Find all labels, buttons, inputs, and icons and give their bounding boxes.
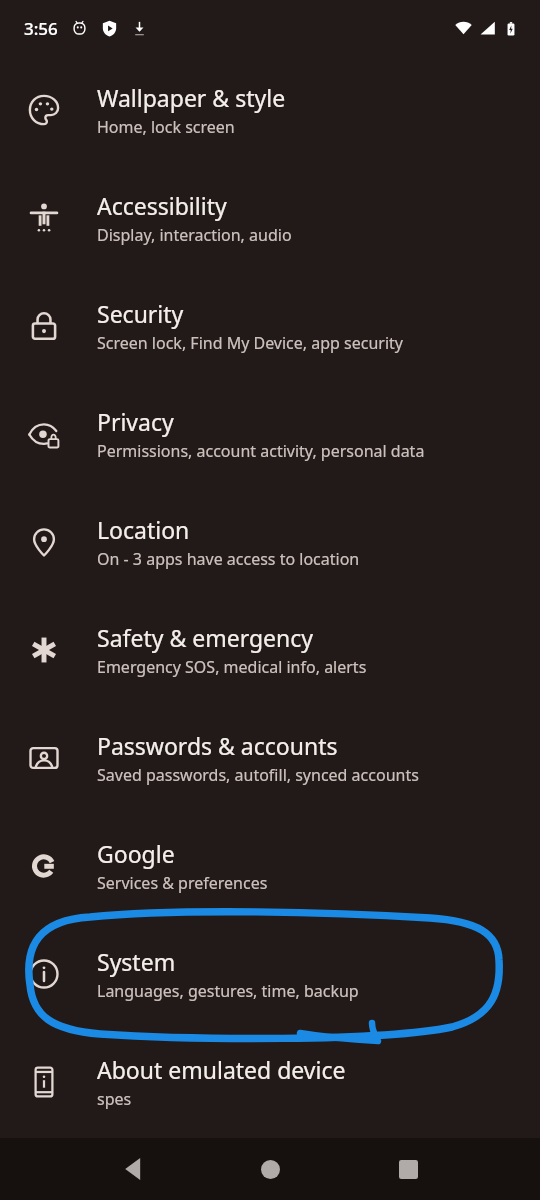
staticText: Passwords & accounts (97, 730, 338, 761)
staticText: Wallpaper & style (97, 82, 286, 113)
button[interactable]: Home (246, 1145, 294, 1193)
button[interactable]: Safety & emergency (0, 596, 540, 704)
staticText: Permissions, account activity, personal … (97, 440, 425, 462)
button[interactable]: About emulated device (0, 1028, 540, 1136)
staticText: Accessibility (97, 190, 227, 221)
staticText: Safety & emergency (97, 622, 314, 653)
staticText: Saved passwords, autofill, synced accoun… (97, 764, 419, 786)
button[interactable]: Google (0, 812, 540, 920)
staticText: Google (97, 838, 175, 869)
button[interactable]: Passwords & accounts (0, 704, 540, 812)
staticText: About emulated device (97, 1054, 346, 1085)
button[interactable]: Recent apps (384, 1145, 432, 1193)
staticText: Home, lock screen (97, 116, 235, 138)
staticText: Location (97, 514, 190, 545)
staticText: spes (97, 1088, 132, 1110)
staticText: Privacy (97, 406, 174, 437)
staticText: Services & preferences (97, 872, 268, 894)
staticText: System (97, 946, 176, 977)
button[interactable]: Accessibility (0, 164, 540, 272)
button[interactable]: Security (0, 272, 540, 380)
staticText: On - 3 apps have access to location (97, 548, 360, 570)
button[interactable]: Location (0, 488, 540, 596)
button[interactable]: Wallpaper & style (0, 56, 540, 164)
staticText: Security (97, 298, 184, 329)
staticText: Screen lock, Find My Device, app securit… (97, 332, 404, 354)
staticText: Emergency SOS, medical info, alerts (97, 656, 367, 678)
staticText: 3:56 (24, 17, 58, 40)
staticText: Languages, gestures, time, backup (97, 980, 359, 1002)
button[interactable]: System (0, 920, 540, 1028)
button[interactable]: Back (110, 1145, 158, 1193)
button[interactable]: Privacy (0, 380, 540, 488)
staticText: Display, interaction, audio (97, 224, 292, 246)
